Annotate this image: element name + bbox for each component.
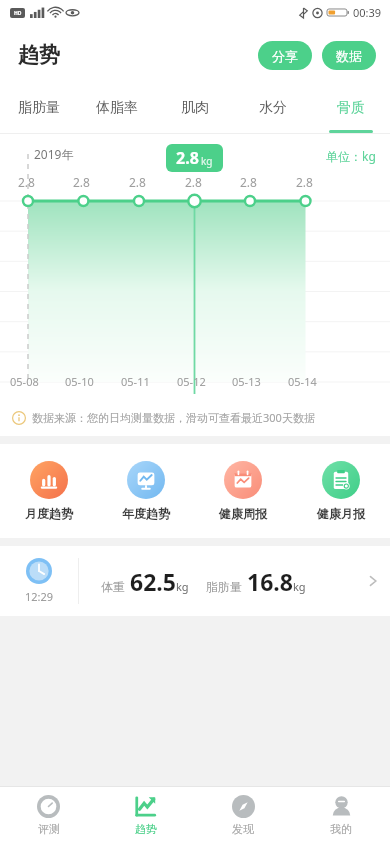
staticText: 健康周报 bbox=[219, 506, 267, 521]
staticText: 05-12 bbox=[177, 374, 206, 389]
staticText: 2.8 bbox=[176, 147, 199, 169]
staticText: 骨质 bbox=[337, 99, 365, 117]
staticText: 单位：kg bbox=[326, 148, 376, 164]
staticText: 体重 bbox=[101, 579, 125, 594]
staticText: 发现 bbox=[232, 822, 254, 836]
staticText: 我的 bbox=[330, 822, 352, 836]
staticText: 00:39 bbox=[353, 5, 382, 20]
staticText: 2.8 bbox=[240, 174, 257, 190]
staticText: kg bbox=[176, 579, 189, 594]
button[interactable]: 发现 bbox=[194, 787, 292, 844]
button[interactable]: 水分 bbox=[234, 86, 312, 130]
button[interactable]: 体脂率 bbox=[78, 86, 156, 130]
button[interactable]: 健康月报 bbox=[292, 444, 390, 538]
staticText: 2.8 bbox=[129, 174, 146, 190]
button[interactable]: 骨质 bbox=[312, 86, 390, 130]
button[interactable]: 健康周报 bbox=[194, 444, 292, 538]
button[interactable]: 年度趋势 bbox=[97, 444, 194, 538]
staticText: 2.8 bbox=[73, 174, 90, 190]
button[interactable]: 评测 bbox=[0, 787, 97, 844]
staticText: 趋势 bbox=[135, 822, 157, 836]
staticText: 2.8 bbox=[185, 174, 202, 190]
staticText: 62.5 bbox=[130, 566, 176, 597]
staticText: 05-14 bbox=[288, 374, 317, 389]
staticText: kg bbox=[201, 154, 213, 168]
button[interactable]: 数据 bbox=[322, 41, 376, 70]
staticText: 2.8 bbox=[296, 174, 313, 190]
button[interactable]: 趋势 bbox=[97, 787, 194, 844]
staticText: 评测 bbox=[38, 822, 60, 836]
staticText: 2019年 bbox=[34, 146, 74, 162]
staticText: 12:29 bbox=[25, 589, 54, 604]
staticText: 2.8 bbox=[18, 174, 35, 190]
staticText: 16.8 bbox=[247, 566, 293, 597]
staticText: 肌肉 bbox=[181, 99, 209, 117]
button[interactable]: 脂肪量 bbox=[0, 86, 78, 130]
button[interactable]: 我的 bbox=[292, 787, 390, 844]
staticText: 月度趋势 bbox=[25, 506, 73, 521]
button[interactable]: 12:29 bbox=[0, 546, 390, 616]
staticText: 05-11 bbox=[121, 374, 150, 389]
staticText: 05-08 bbox=[10, 374, 39, 389]
staticText: HD bbox=[14, 10, 22, 17]
staticText: 分享 bbox=[272, 48, 298, 64]
staticText: 水分 bbox=[259, 99, 287, 117]
staticText: 体脂率 bbox=[96, 99, 138, 117]
button[interactable]: 月度趋势 bbox=[0, 444, 97, 538]
staticText: 脂肪量 bbox=[206, 579, 242, 594]
staticText: 年度趋势 bbox=[122, 506, 170, 521]
staticText: 数据来源：您的日均测量数据，滑动可查看最近300天数据 bbox=[32, 410, 315, 425]
staticText: 数据 bbox=[336, 48, 362, 64]
staticText: 脂肪量 bbox=[18, 99, 60, 117]
button[interactable]: 分享 bbox=[258, 41, 312, 70]
staticText: 05-10 bbox=[65, 374, 94, 389]
staticText: 05-13 bbox=[232, 374, 261, 389]
staticText: kg bbox=[293, 579, 306, 594]
button[interactable]: 肌肉 bbox=[156, 86, 234, 130]
staticText: 趋势 bbox=[18, 42, 60, 68]
staticText: 健康月报 bbox=[317, 506, 365, 521]
